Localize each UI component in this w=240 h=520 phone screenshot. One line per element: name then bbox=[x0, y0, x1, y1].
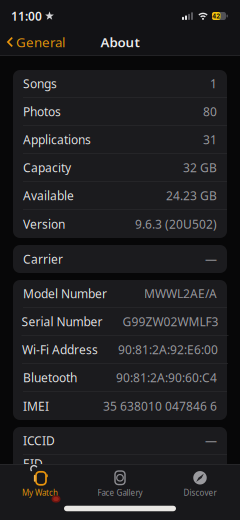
staticText: 31 bbox=[203, 132, 217, 148]
staticText: Model Number bbox=[23, 286, 107, 302]
staticText: Face Gallery bbox=[97, 487, 142, 498]
staticText: 11:00 bbox=[11, 8, 42, 24]
staticText: Available bbox=[23, 188, 74, 204]
staticText: Bluetooth bbox=[23, 370, 77, 386]
staticText: My Watch bbox=[22, 487, 58, 498]
staticText: EID bbox=[23, 455, 43, 471]
staticText: ICCID bbox=[23, 433, 55, 449]
staticText: Serial Number bbox=[21, 314, 102, 330]
staticText: Discover bbox=[183, 487, 216, 498]
staticText: 80 bbox=[203, 104, 217, 120]
staticText: Capacity bbox=[23, 160, 71, 176]
staticText: 90:81:2A:92:E6:00 bbox=[118, 342, 218, 358]
staticText: Wi-Fi Address bbox=[22, 342, 98, 358]
button[interactable]: Face Gallery bbox=[80, 468, 160, 501]
staticText: 9.6.3 (20U502) bbox=[135, 216, 217, 232]
staticText: Carrier bbox=[23, 251, 63, 267]
staticText: 1 bbox=[210, 76, 217, 92]
button[interactable]: Discover bbox=[160, 468, 240, 501]
staticText: 90:81:2A:90:60:C4 bbox=[116, 370, 217, 386]
staticText: General bbox=[16, 33, 65, 51]
button[interactable]: Back to General bbox=[0, 33, 65, 51]
staticText: IMEI bbox=[23, 398, 49, 414]
staticText: About bbox=[100, 33, 139, 51]
staticText: 42 bbox=[212, 12, 220, 20]
staticText: Version bbox=[23, 216, 65, 232]
staticText: 32 GB bbox=[183, 160, 217, 176]
staticText: 24.23 GB bbox=[166, 188, 217, 204]
staticText: Songs bbox=[23, 76, 57, 92]
staticText: 35 638010 047846 6 bbox=[103, 398, 217, 414]
button[interactable]: My Watch bbox=[0, 468, 80, 501]
staticText: Applications bbox=[23, 132, 91, 148]
staticText: G99ZW02WMLF3 bbox=[122, 314, 218, 330]
staticText: — bbox=[205, 433, 217, 449]
staticText: MWWL2AE/A bbox=[144, 286, 217, 302]
staticText: — bbox=[205, 251, 217, 267]
staticText: Photos bbox=[23, 104, 61, 120]
